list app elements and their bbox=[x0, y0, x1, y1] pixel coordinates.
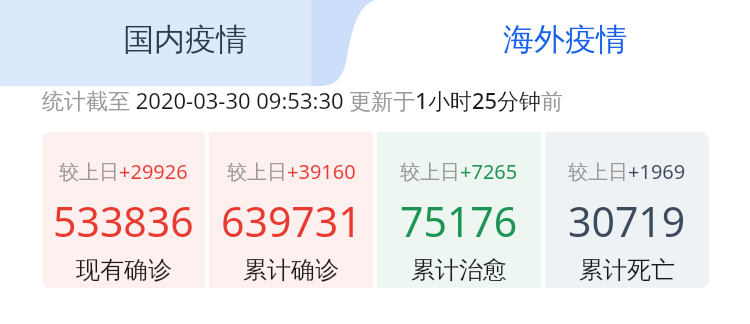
button[interactable]: 较上日+7265 bbox=[377, 132, 541, 288]
staticText: 639731 bbox=[221, 193, 362, 249]
staticText: 海外疫情 bbox=[503, 20, 627, 59]
staticText: 累计确诊 bbox=[243, 255, 339, 285]
staticText: 较上日+29926 bbox=[59, 158, 188, 185]
staticText: 533836 bbox=[53, 193, 194, 249]
staticText: 累计治愈 bbox=[411, 255, 507, 285]
button[interactable]: 较上日+39160 bbox=[209, 132, 373, 288]
staticText: 统计截至 2020-03-30 09:53:30 更新于1小时25分钟前 bbox=[42, 85, 564, 115]
button[interactable]: 较上日+29926 bbox=[42, 132, 205, 288]
staticText: 较上日+1969 bbox=[568, 158, 686, 185]
staticText: 国内疫情 bbox=[123, 20, 247, 59]
button[interactable]: 较上日+1969 bbox=[545, 132, 709, 288]
staticText: 较上日+39160 bbox=[227, 158, 356, 185]
staticText: 较上日+7265 bbox=[400, 158, 518, 185]
button[interactable]: 国内疫情 bbox=[0, 0, 370, 86]
staticText: 累计死亡 bbox=[579, 255, 675, 285]
button[interactable]: 海外疫情 bbox=[380, 0, 750, 86]
staticText: 现有确诊 bbox=[76, 255, 172, 285]
staticText: 30719 bbox=[568, 193, 686, 249]
staticText: 75176 bbox=[400, 193, 518, 249]
